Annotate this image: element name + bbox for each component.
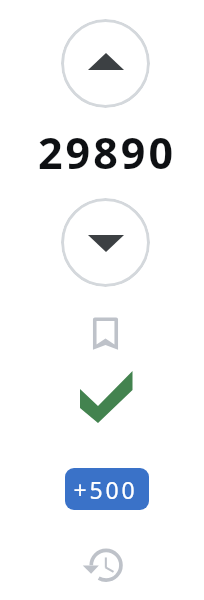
button[interactable]: Downvote	[61, 198, 150, 287]
staticText: 29890	[38, 123, 176, 182]
button[interactable]: Bookmark	[84, 312, 127, 355]
button[interactable]: +500	[65, 468, 149, 510]
button[interactable]: History	[82, 543, 127, 588]
staticText: +500	[73, 474, 138, 505]
button[interactable]: Accepted answer	[74, 364, 138, 428]
button[interactable]: Upvote	[61, 19, 150, 108]
